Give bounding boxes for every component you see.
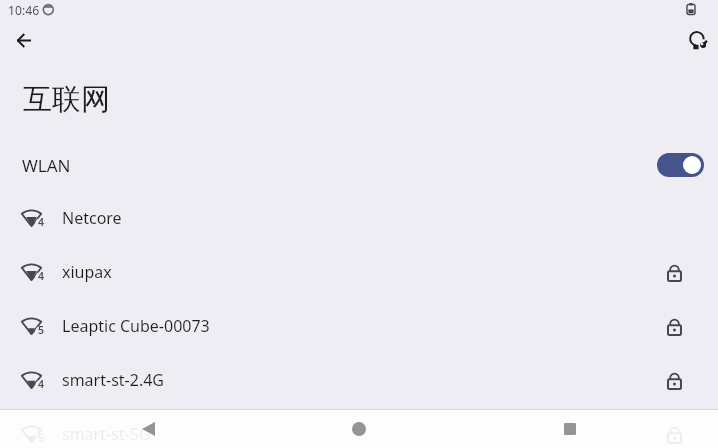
staticText: 10:46 — [8, 2, 40, 19]
button[interactable]: 4 — [0, 245, 718, 299]
staticText: 4 — [38, 377, 45, 391]
button[interactable]: Recent apps — [552, 411, 588, 447]
staticText: 5 — [38, 323, 45, 337]
staticText: 4 — [38, 269, 45, 283]
button[interactable]: 5 — [0, 299, 718, 353]
staticText: smart-st-2.4G — [62, 369, 164, 391]
button[interactable]: 5 — [0, 407, 718, 448]
staticText: smart-st-5G — [62, 423, 151, 445]
staticText: 互联网 — [23, 81, 110, 118]
button[interactable] — [657, 153, 704, 177]
button[interactable]: Home — [341, 411, 377, 447]
button[interactable]: Back — [8, 24, 40, 56]
staticText: 4 — [38, 215, 45, 229]
staticText: Netcore — [62, 207, 122, 229]
staticText: 5 — [38, 431, 45, 445]
button[interactable]: Fix connectivity — [682, 24, 714, 56]
staticText: WLAN — [22, 154, 71, 177]
staticText: Leaptic Cube-00073 — [62, 315, 210, 337]
button[interactable]: Back — [130, 411, 166, 447]
button[interactable]: WLAN — [0, 142, 718, 188]
staticText: xiupax — [62, 261, 112, 283]
button[interactable]: 4 — [0, 353, 718, 407]
button[interactable]: 4 — [0, 191, 718, 245]
